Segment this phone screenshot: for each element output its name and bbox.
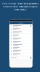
button[interactable] xyxy=(10,43,32,47)
button[interactable] xyxy=(10,50,32,53)
button[interactable] xyxy=(10,37,32,40)
button[interactable]: More xyxy=(29,22,32,24)
button[interactable] xyxy=(10,28,32,31)
button[interactable] xyxy=(10,31,32,34)
button[interactable] xyxy=(10,40,32,43)
staticText: Add notes, view engagement xyxy=(1,2,38,5)
staticText: next steps xyxy=(14,8,26,11)
button[interactable] xyxy=(10,56,32,59)
button[interactable] xyxy=(10,34,32,37)
staticText: history and take actionable xyxy=(3,5,37,8)
button[interactable] xyxy=(10,47,32,50)
button[interactable] xyxy=(10,25,32,28)
button[interactable] xyxy=(10,53,32,56)
